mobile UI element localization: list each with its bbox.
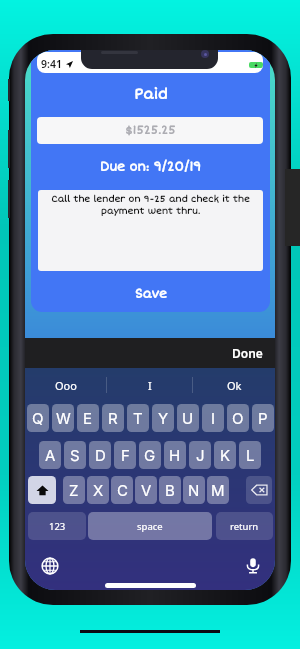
button[interactable]: E bbox=[77, 404, 99, 432]
staticText: $1525.25 bbox=[125, 124, 176, 138]
button[interactable]: V bbox=[135, 476, 157, 504]
staticText: D bbox=[95, 446, 106, 464]
staticText: Ok bbox=[227, 378, 242, 393]
button[interactable]: Save bbox=[31, 285, 270, 303]
staticText: Call the lender on 9-25 and check it the… bbox=[49, 194, 252, 216]
staticText: Paid bbox=[134, 86, 168, 103]
staticText: K bbox=[220, 446, 231, 464]
button[interactable]: space bbox=[88, 512, 212, 540]
staticText: W bbox=[56, 409, 71, 427]
button[interactable]: W bbox=[52, 404, 74, 432]
button[interactable]: $1525.25 bbox=[37, 117, 263, 144]
staticText: B bbox=[165, 481, 175, 499]
button[interactable]: Z bbox=[63, 476, 85, 504]
staticText: S bbox=[70, 446, 80, 464]
staticText: E bbox=[83, 409, 93, 427]
staticText: O bbox=[232, 409, 244, 427]
button[interactable]: M bbox=[207, 476, 229, 504]
staticText: P bbox=[258, 409, 268, 427]
button[interactable]: G bbox=[139, 441, 161, 469]
staticText: V bbox=[141, 481, 152, 499]
button[interactable]: N bbox=[183, 476, 205, 504]
button[interactable]: B bbox=[159, 476, 181, 504]
staticText: 9:41 bbox=[41, 57, 62, 71]
staticText: Due on: 9/20/19 bbox=[100, 160, 202, 175]
button[interactable]: T bbox=[127, 404, 149, 432]
button[interactable]: Backspace bbox=[246, 476, 272, 504]
button[interactable]: R bbox=[102, 404, 124, 432]
staticText: L bbox=[246, 446, 255, 464]
staticText: C bbox=[117, 481, 128, 499]
button[interactable]: return bbox=[216, 512, 273, 540]
button[interactable]: L bbox=[239, 441, 261, 469]
staticText: A bbox=[45, 446, 56, 464]
button[interactable]: U bbox=[177, 404, 199, 432]
button[interactable]: S bbox=[64, 441, 86, 469]
button[interactable]: Dictate bbox=[244, 556, 262, 574]
button[interactable]: C bbox=[111, 476, 133, 504]
button[interactable]: Switch keyboard bbox=[41, 557, 59, 575]
button[interactable]: Ooo bbox=[25, 368, 106, 402]
button[interactable]: I bbox=[202, 404, 224, 432]
staticText: space bbox=[137, 520, 163, 533]
button[interactable]: Done bbox=[220, 340, 275, 366]
staticText: N bbox=[188, 481, 200, 499]
button[interactable]: Y bbox=[152, 404, 174, 432]
staticText: I bbox=[148, 378, 152, 393]
button[interactable]: A bbox=[39, 441, 61, 469]
staticText: M bbox=[211, 481, 225, 499]
staticText: Z bbox=[69, 481, 79, 499]
staticText: Done bbox=[232, 345, 263, 361]
button[interactable]: Shift bbox=[28, 476, 56, 504]
button[interactable]: O bbox=[227, 404, 249, 432]
staticText: X bbox=[93, 481, 104, 499]
button[interactable]: Q bbox=[27, 404, 49, 432]
staticText: J bbox=[196, 446, 205, 464]
button[interactable]: F bbox=[114, 441, 136, 469]
staticText: F bbox=[121, 446, 130, 464]
button[interactable]: J bbox=[189, 441, 211, 469]
button[interactable]: H bbox=[164, 441, 186, 469]
button[interactable]: X bbox=[87, 476, 109, 504]
button[interactable]: D bbox=[89, 441, 111, 469]
staticText: Q bbox=[32, 409, 44, 427]
staticText: G bbox=[144, 446, 156, 464]
staticText: Y bbox=[158, 409, 169, 427]
button[interactable]: K bbox=[214, 441, 236, 469]
button[interactable]: Call the lender on 9-25 and check it the… bbox=[38, 190, 263, 271]
staticText: R bbox=[108, 409, 118, 427]
button[interactable]: 123 bbox=[28, 512, 86, 540]
staticText: Save bbox=[135, 287, 167, 302]
staticText: H bbox=[169, 446, 181, 464]
staticText: 123 bbox=[49, 520, 66, 533]
button[interactable]: Ok bbox=[193, 368, 275, 402]
staticText: I bbox=[211, 409, 216, 427]
button[interactable]: I bbox=[107, 368, 192, 402]
staticText: U bbox=[182, 409, 194, 427]
staticText: T bbox=[133, 409, 143, 427]
staticText: return bbox=[230, 520, 259, 533]
staticText: Ooo bbox=[55, 378, 77, 393]
button[interactable]: P bbox=[252, 404, 274, 432]
